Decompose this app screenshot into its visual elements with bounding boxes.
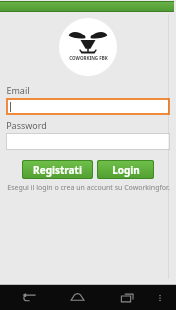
staticText: Registrati [33, 163, 82, 177]
staticText: COWORKING FBK [69, 55, 108, 61]
button[interactable]: Back [4, 285, 53, 310]
staticText: Esegui il login o crea un account su Cow… [7, 183, 170, 193]
button[interactable]: Registrati [22, 160, 93, 179]
staticText: Password [6, 119, 47, 131]
button[interactable]: Coworking FBK logo [59, 18, 117, 76]
button[interactable]: Login [97, 160, 154, 179]
button[interactable] [6, 98, 170, 115]
staticText: Email [6, 84, 30, 96]
button[interactable]: Home [53, 285, 102, 310]
staticText: Login [112, 163, 140, 177]
button[interactable]: More options [151, 285, 169, 310]
button[interactable] [6, 133, 170, 150]
button[interactable]: Recents [102, 285, 151, 310]
